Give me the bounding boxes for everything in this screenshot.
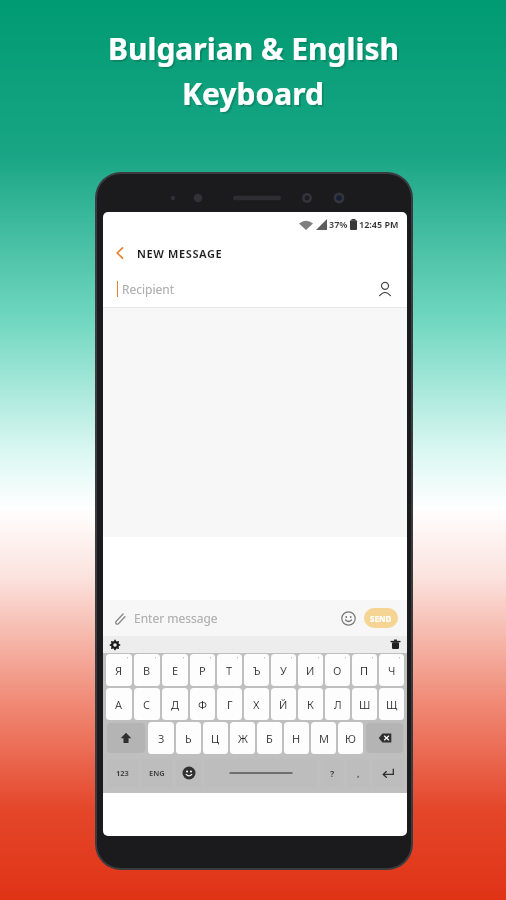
button[interactable]: Т (217, 654, 242, 686)
staticText: Bulgarian & English (108, 28, 399, 69)
staticText: Ш (359, 697, 371, 712)
staticText: Л (334, 697, 342, 712)
staticText: ' (155, 655, 157, 663)
button[interactable]: Р (190, 654, 215, 686)
staticText: Х (253, 697, 260, 712)
button[interactable]: Emoji (341, 611, 356, 626)
button[interactable]: Н (284, 722, 309, 754)
staticText: С (143, 697, 151, 712)
staticText: Ц (211, 731, 220, 746)
staticText: Н (292, 731, 301, 746)
staticText: Ч (388, 663, 396, 678)
button[interactable]: 123 (107, 759, 138, 787)
staticText: В (143, 663, 151, 678)
staticText: Keyboard (182, 73, 324, 114)
staticText: ' (237, 655, 239, 663)
button[interactable]: Ш (352, 688, 377, 720)
staticText: Т (226, 663, 233, 678)
staticText: И (306, 663, 315, 678)
staticText: М (319, 731, 329, 746)
button[interactable]: Keyboard settings (109, 639, 121, 651)
button[interactable]: Ж (230, 722, 255, 754)
staticText: ' (345, 655, 347, 663)
staticText: Е (172, 663, 179, 678)
staticText: П (360, 663, 369, 678)
button[interactable]: SEND (364, 608, 398, 628)
staticText: ' (318, 655, 320, 663)
staticText: ' (264, 655, 266, 663)
staticText: ' (183, 655, 185, 663)
button[interactable]: Attach (112, 611, 127, 626)
staticText: 37% (329, 218, 348, 230)
other: Add contact (377, 281, 393, 297)
button[interactable]: Б (257, 722, 282, 754)
button[interactable]: Delete (390, 639, 401, 650)
button[interactable]: И (298, 654, 323, 686)
button[interactable]: Enter (373, 759, 403, 787)
staticText: Щ (386, 697, 398, 712)
button[interactable]: С (134, 688, 160, 720)
button[interactable]: ? (321, 759, 343, 787)
button[interactable]: Ч (379, 654, 404, 686)
staticText: SEND (370, 613, 392, 624)
staticText: Ж (238, 731, 248, 746)
button[interactable]: Emoji (176, 759, 201, 787)
button[interactable]: В (134, 654, 160, 686)
button[interactable]: З (148, 722, 174, 754)
button[interactable]: ENG (142, 759, 172, 787)
button[interactable]: У (271, 654, 296, 686)
staticText: ? (330, 767, 335, 779)
button[interactable]: М (311, 722, 336, 754)
staticText: ' (127, 655, 129, 663)
button[interactable]: Space (205, 759, 317, 787)
button[interactable]: О (325, 654, 350, 686)
button[interactable]: Ц (203, 722, 228, 754)
button[interactable]: Х (244, 688, 269, 720)
button[interactable]: , (347, 759, 369, 787)
staticText: У (280, 663, 287, 678)
button[interactable]: Ф (190, 688, 215, 720)
button[interactable]: Й (271, 688, 296, 720)
staticText: 12:45 PM (359, 218, 399, 230)
button[interactable]: Shift (107, 723, 145, 753)
staticText: Д (171, 697, 180, 712)
staticText: , (357, 767, 360, 779)
button[interactable]: Е (162, 654, 188, 686)
staticText: Я (115, 663, 123, 678)
staticText: Ъ (253, 663, 261, 678)
button[interactable]: А (106, 688, 132, 720)
button[interactable]: Backspace (366, 723, 403, 753)
staticText: NEW MESSAGE (137, 246, 223, 261)
button[interactable]: Л (325, 688, 350, 720)
staticText: ENG (149, 768, 165, 778)
staticText: О (333, 663, 342, 678)
button[interactable]: Ъ (244, 654, 269, 686)
button[interactable]: Д (162, 688, 188, 720)
button[interactable]: Г (217, 688, 242, 720)
staticText: Keyboard (184, 75, 326, 116)
staticText: ' (291, 655, 293, 663)
staticText: ' (399, 655, 401, 663)
staticText: А (115, 697, 123, 712)
staticText: Bulgarian & English (110, 30, 401, 71)
staticText: К (307, 697, 314, 712)
button[interactable]: Recipient (103, 270, 407, 308)
staticText: Ю (345, 731, 356, 746)
staticText: 123 (116, 768, 129, 778)
staticText: Ф (198, 697, 207, 712)
button[interactable]: Щ (379, 688, 404, 720)
button[interactable]: Ь (176, 722, 201, 754)
staticText: Б (266, 731, 273, 746)
staticText: ' (210, 655, 212, 663)
staticText: Enter message (134, 610, 218, 626)
staticText: З (158, 731, 165, 746)
staticText: ' (372, 655, 374, 663)
staticText: Г (227, 697, 233, 712)
button[interactable]: П (352, 654, 377, 686)
staticText: Р (199, 663, 206, 678)
button[interactable]: Ю (338, 722, 363, 754)
button[interactable]: Back (103, 236, 137, 270)
staticText: Recipient (122, 281, 175, 297)
button[interactable]: К (298, 688, 323, 720)
button[interactable]: Я (106, 654, 132, 686)
